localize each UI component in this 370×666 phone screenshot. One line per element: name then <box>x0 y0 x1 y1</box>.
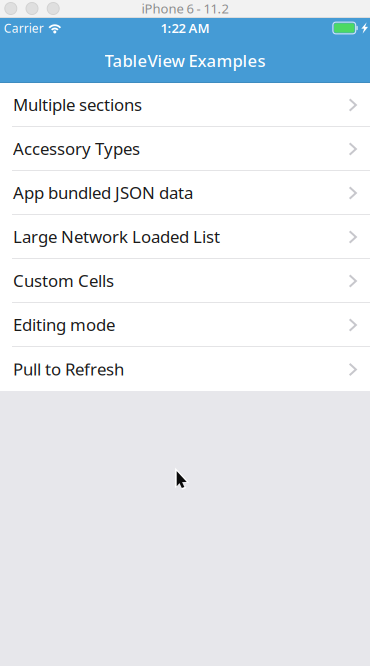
staticText: App bundled JSON data <box>13 181 193 204</box>
staticText: Carrier <box>4 20 44 36</box>
button[interactable]: Custom Cells <box>0 259 370 303</box>
staticText: 1:22 AM <box>160 19 209 37</box>
staticText: iPhone 6 - 11.2 <box>141 0 228 17</box>
button[interactable]: App bundled JSON data <box>0 171 370 215</box>
button[interactable]: Large Network Loaded List <box>0 215 370 259</box>
button[interactable]: Accessory Types <box>0 127 370 171</box>
staticText: Editing mode <box>13 313 115 336</box>
button[interactable]: Multiple sections <box>0 83 370 127</box>
staticText: Custom Cells <box>13 269 114 292</box>
staticText: Multiple sections <box>13 93 142 116</box>
staticText: Large Network Loaded List <box>13 225 220 248</box>
staticText: Pull to Refresh <box>13 358 124 380</box>
button[interactable]: Editing mode <box>0 303 370 347</box>
button[interactable]: Pull to Refresh <box>0 347 370 391</box>
staticText: Accessory Types <box>13 137 140 160</box>
staticText: TableView Examples <box>104 49 265 72</box>
